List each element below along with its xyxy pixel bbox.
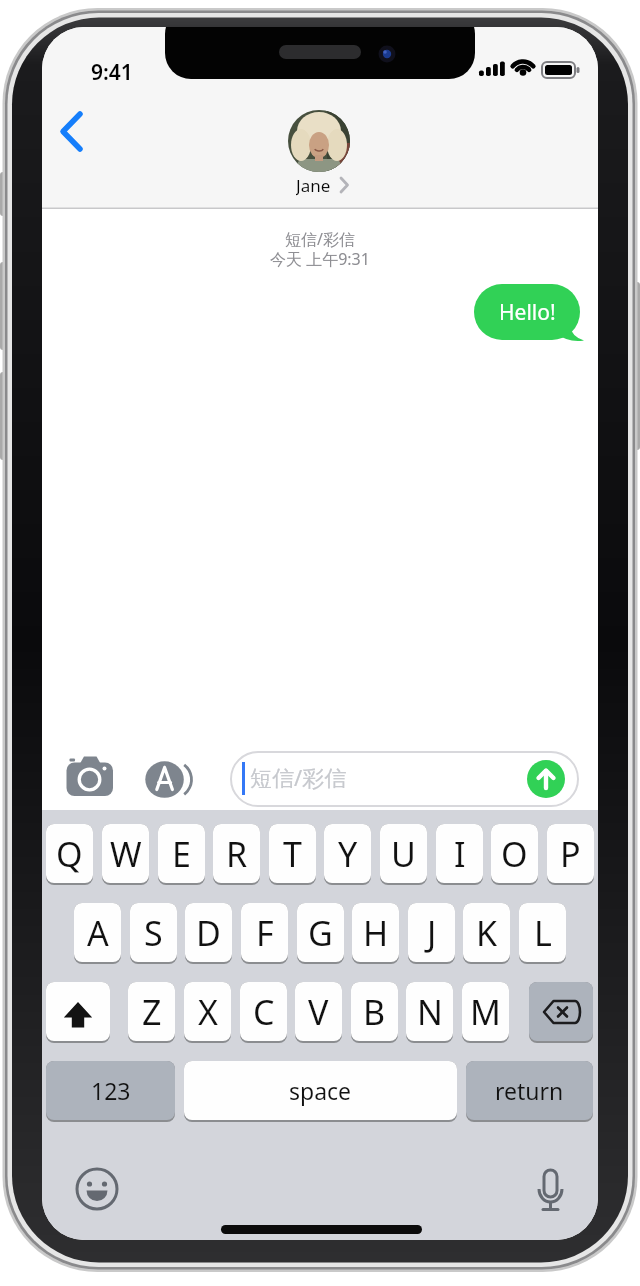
button[interactable] xyxy=(527,760,565,798)
staticText: 短信/彩信 xyxy=(285,228,355,250)
button[interactable]: D xyxy=(185,903,232,964)
button[interactable]: Z xyxy=(128,982,175,1043)
button[interactable]: O xyxy=(491,824,538,885)
button[interactable]: Hello! xyxy=(474,284,580,340)
button[interactable]: E xyxy=(158,824,205,885)
button[interactable] xyxy=(75,1167,119,1211)
button[interactable]: space xyxy=(184,1061,457,1122)
button[interactable] xyxy=(50,105,95,160)
button[interactable] xyxy=(529,982,593,1043)
button[interactable]: M xyxy=(462,982,509,1043)
button[interactable]: W xyxy=(102,824,149,885)
staticText: 今天 上午9:31 xyxy=(270,248,370,270)
staticText: C xyxy=(253,989,275,1035)
staticText: S xyxy=(144,910,163,956)
staticText: U xyxy=(391,831,416,877)
button[interactable]: F xyxy=(241,903,288,964)
staticText: 123 xyxy=(91,1075,131,1106)
button[interactable] xyxy=(285,106,355,200)
staticText: Z xyxy=(142,989,162,1035)
button[interactable]: S xyxy=(130,903,177,964)
button[interactable]: G xyxy=(297,903,344,964)
staticText: T xyxy=(283,831,302,877)
button[interactable]: L xyxy=(519,903,566,964)
staticText: Jane xyxy=(296,174,331,196)
button[interactable]: A xyxy=(74,903,121,964)
button[interactable] xyxy=(46,982,110,1043)
staticText: return xyxy=(495,1075,564,1106)
button[interactable]: P xyxy=(547,824,594,885)
staticText: M xyxy=(470,989,501,1035)
button[interactable]: J xyxy=(408,903,455,964)
button[interactable] xyxy=(62,752,118,806)
button[interactable]: R xyxy=(213,824,260,885)
staticText: F xyxy=(256,910,274,956)
button[interactable]: Q xyxy=(46,824,93,885)
button[interactable] xyxy=(140,752,192,806)
button[interactable]: K xyxy=(463,903,510,964)
staticText: V xyxy=(308,989,329,1035)
button[interactable]: return xyxy=(466,1061,593,1122)
staticText: O xyxy=(501,831,528,877)
staticText: 9:41 xyxy=(91,58,133,82)
staticText: X xyxy=(198,989,218,1035)
button[interactable]: C xyxy=(240,982,287,1043)
staticText: E xyxy=(172,831,191,877)
staticText: K xyxy=(476,910,498,956)
staticText: space xyxy=(289,1075,352,1106)
button[interactable]: N xyxy=(406,982,453,1043)
button[interactable]: V xyxy=(295,982,342,1043)
staticText: B xyxy=(363,989,386,1035)
button[interactable]: U xyxy=(380,824,427,885)
staticText: 短信/彩信 xyxy=(250,762,347,790)
staticText: D xyxy=(196,910,221,956)
staticText: Q xyxy=(56,831,83,877)
button[interactable]: X xyxy=(184,982,231,1043)
button[interactable]: H xyxy=(352,903,399,964)
staticText: W xyxy=(110,831,142,877)
staticText: Hello! xyxy=(499,298,556,327)
button[interactable]: Y xyxy=(324,824,371,885)
button[interactable]: I xyxy=(436,824,483,885)
button[interactable]: 123 xyxy=(46,1061,175,1122)
staticText: J xyxy=(427,910,437,956)
button[interactable]: T xyxy=(269,824,316,885)
button[interactable] xyxy=(528,1167,572,1211)
staticText: G xyxy=(308,910,333,956)
staticText: Y xyxy=(338,831,358,877)
button[interactable] xyxy=(231,752,578,806)
staticText: L xyxy=(534,910,552,956)
staticText: P xyxy=(560,831,581,877)
staticText: H xyxy=(363,910,389,956)
staticText: R xyxy=(226,831,248,877)
button[interactable]: B xyxy=(351,982,398,1043)
staticText: I xyxy=(454,831,466,877)
staticText: N xyxy=(417,989,443,1035)
staticText: A xyxy=(87,910,109,956)
